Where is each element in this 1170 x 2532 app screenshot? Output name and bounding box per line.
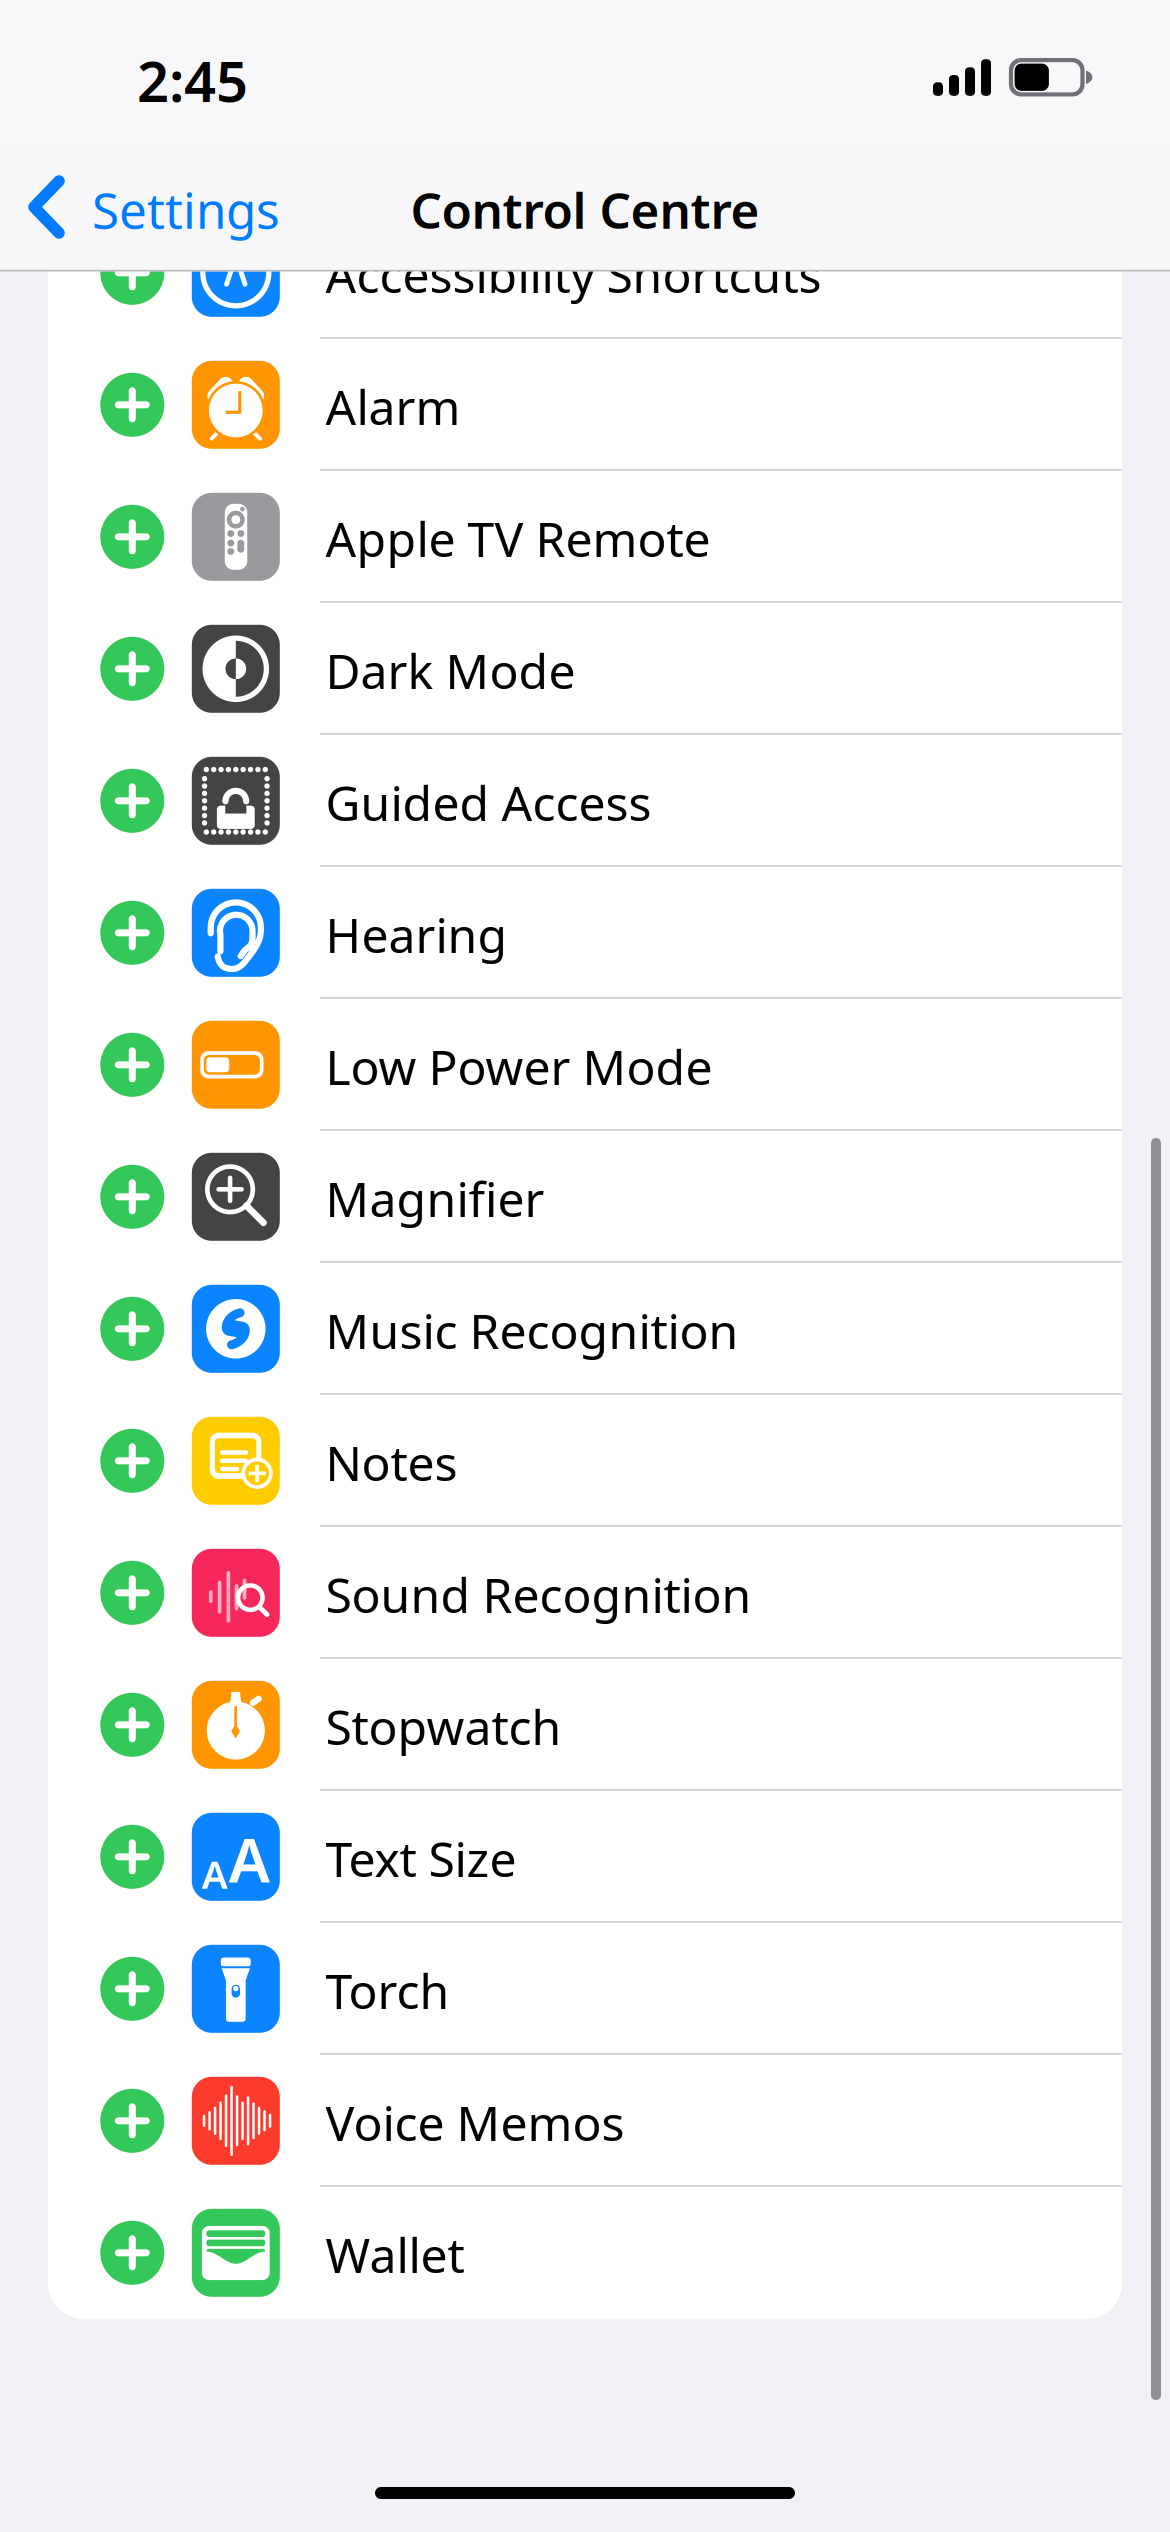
- button[interactable]: Wallet: [48, 2187, 1122, 2319]
- button[interactable]: A: [48, 1791, 1122, 1923]
- staticText: Notes: [325, 1430, 457, 1494]
- button[interactable]: Music Recognition: [48, 1263, 1122, 1395]
- staticText: Wallet: [325, 2222, 464, 2286]
- button[interactable]: Settings: [0, 148, 320, 271]
- staticText: Text Size: [325, 1826, 516, 1890]
- staticText: Control Centre: [410, 177, 759, 242]
- button[interactable]: Hearing: [48, 867, 1122, 999]
- button[interactable]: Guided Access: [48, 735, 1122, 867]
- staticText: Magnifier: [325, 1166, 544, 1230]
- button[interactable]: Sound Recognition: [48, 1527, 1122, 1659]
- staticText: Accessibility Shortcuts: [325, 242, 821, 306]
- staticText: Alarm: [325, 374, 460, 438]
- staticText: Hearing: [325, 902, 507, 966]
- button[interactable]: Magnifier: [48, 1131, 1122, 1263]
- staticText: Low Power Mode: [325, 1034, 712, 1098]
- button[interactable]: Apple TV Remote: [48, 471, 1122, 603]
- staticText: 2:45: [137, 43, 248, 117]
- button[interactable]: Notes: [48, 1395, 1122, 1527]
- button[interactable]: Alarm: [48, 339, 1122, 471]
- staticText: Torch: [325, 1958, 449, 2022]
- staticText: Sound Recognition: [325, 1562, 751, 1626]
- staticText: Dark Mode: [325, 638, 575, 702]
- staticText: Guided Access: [325, 770, 651, 834]
- button[interactable]: Dark Mode: [48, 603, 1122, 735]
- staticText: Settings: [92, 177, 280, 242]
- button[interactable]: Low Power Mode: [48, 999, 1122, 1131]
- staticText: Voice Memos: [325, 2090, 624, 2154]
- staticText: A: [202, 1848, 228, 1899]
- staticText: Apple TV Remote: [325, 506, 710, 570]
- button[interactable]: Torch: [48, 1923, 1122, 2055]
- staticText: A: [229, 1818, 270, 1899]
- staticText: Stopwatch: [325, 1694, 561, 1758]
- button[interactable]: Stopwatch: [48, 1659, 1122, 1791]
- button[interactable]: Voice Memos: [48, 2055, 1122, 2187]
- staticText: Music Recognition: [325, 1298, 738, 1362]
- button[interactable]: Accessibility Shortcuts: [48, 207, 1122, 339]
